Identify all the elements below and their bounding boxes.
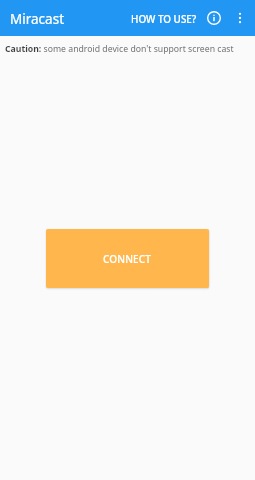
staticText: HOW TO USE?	[131, 12, 197, 25]
button[interactable]: CONNECT	[46, 229, 209, 288]
button[interactable]: HOW TO USE?	[128, 7, 200, 30]
staticText: Caution: some android device don't suppo…	[5, 43, 234, 55]
button[interactable]: Info	[201, 5, 226, 30]
staticText: CONNECT	[103, 252, 152, 266]
button[interactable]: More options	[229, 7, 251, 29]
staticText: Miracast	[10, 10, 64, 28]
